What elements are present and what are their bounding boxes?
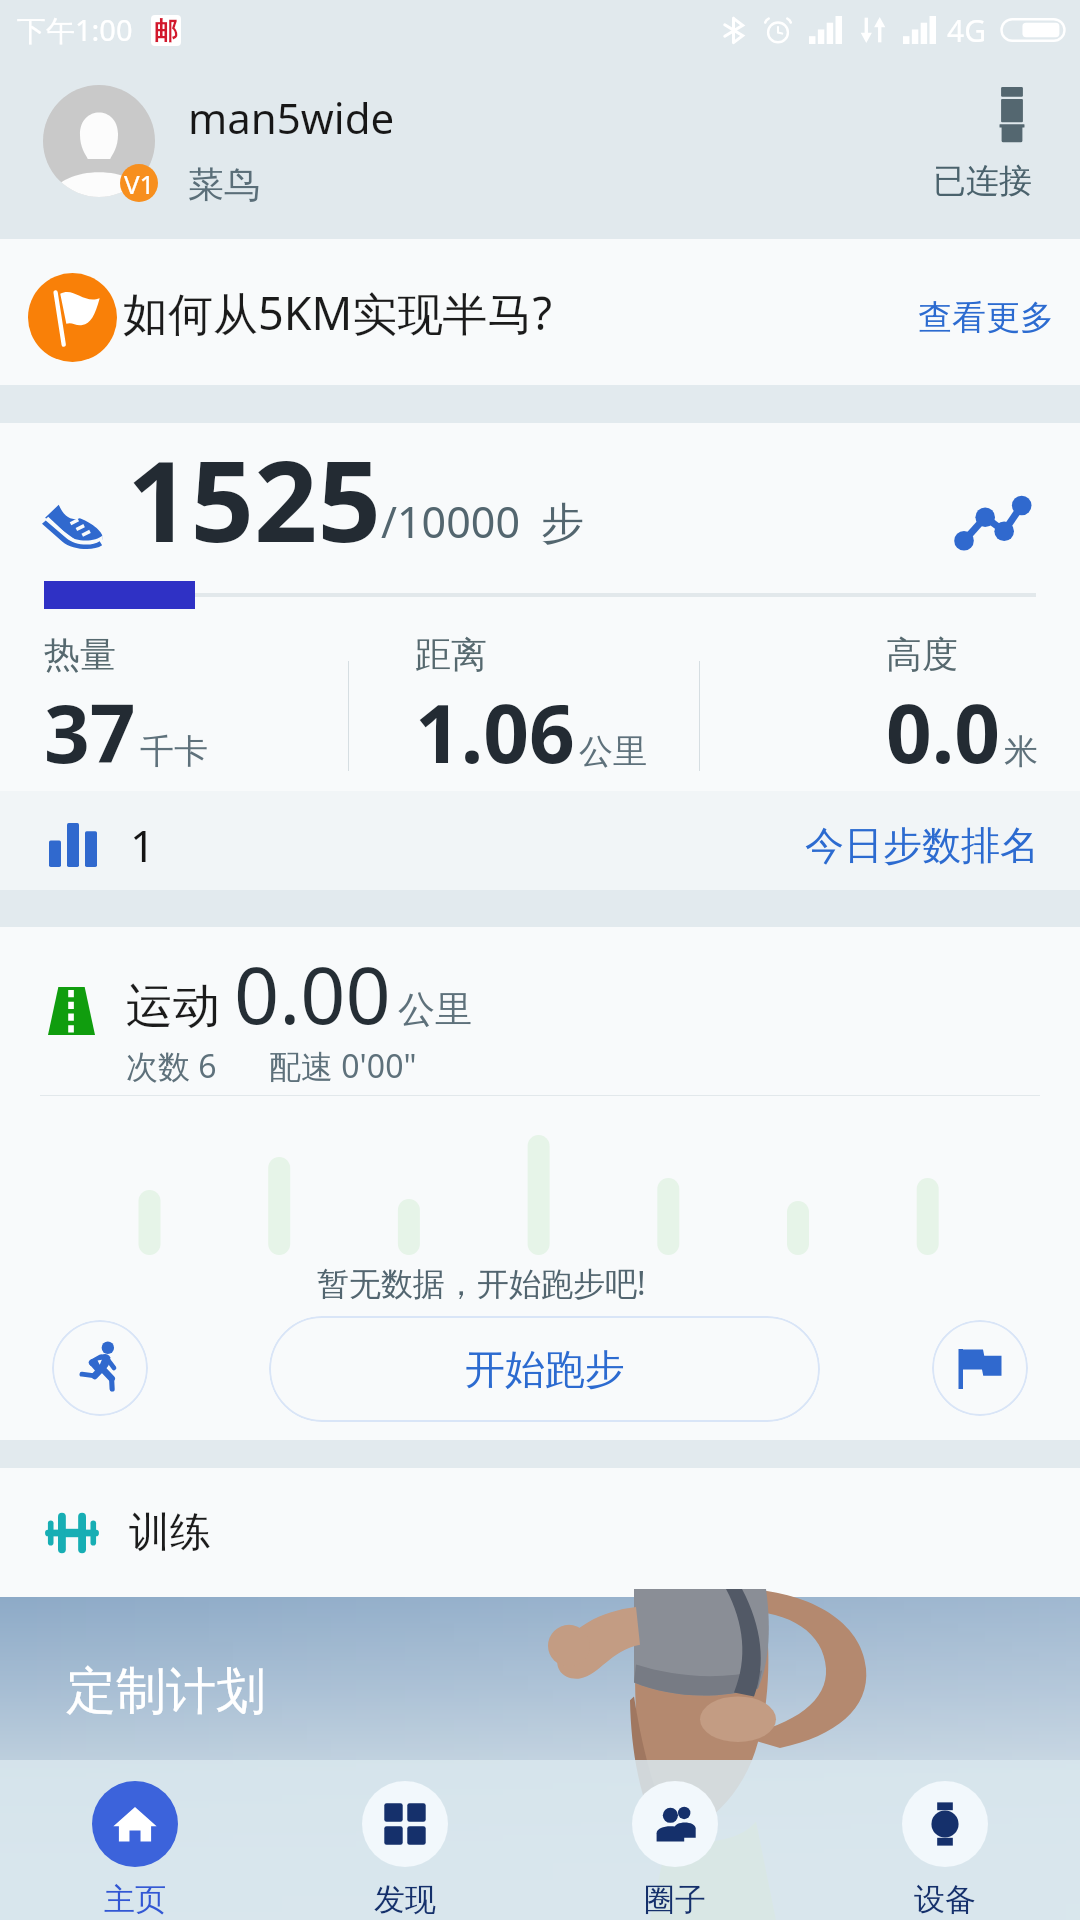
staticText: 距离 [415,632,487,677]
staticText: 设备 [914,1880,976,1919]
staticText: 开始跑步 [465,1344,625,1394]
button[interactable]: 圈子 [540,1760,810,1920]
staticText: 下午1:00 [17,10,133,50]
staticText: 1.06 [415,677,575,782]
button[interactable]: 目标 [932,1320,1028,1416]
staticText: 圈子 [644,1880,706,1919]
staticText: 查看更多 [918,296,1054,339]
staticText: 1525 [127,423,381,559]
button[interactable]: man5wide [188,92,395,207]
button[interactable]: 已连接 [880,60,1032,239]
staticText: 如何从5KM实现半马? [123,282,552,343]
staticText: man5wide [188,89,395,146]
staticText: 米 [1004,730,1038,773]
staticText: 热量 [44,632,116,677]
staticText: 邮 [154,16,178,46]
staticText: 发现 [374,1880,436,1919]
staticText: 运动 [126,977,220,1036]
staticText: 高度 [886,632,958,677]
button[interactable]: 步数趋势 [940,481,1045,567]
staticText: 37 [44,677,136,782]
staticText: 菜鸟 [188,162,260,207]
staticText: 0.0 [886,677,1000,782]
button[interactable]: 头像 [43,85,155,215]
staticText: /10000 [381,492,520,551]
staticText: 千卡 [140,730,208,773]
staticText: 0.00 [234,940,391,1048]
staticText: 公里 [579,730,647,773]
staticText: 定制计划 [66,1660,266,1723]
button[interactable]: 1 [0,791,1080,890]
button[interactable]: 发现 [270,1760,540,1920]
staticText: 今日步数排名 [805,821,1039,870]
staticText: 主页 [104,1880,166,1919]
button[interactable]: 设备 [810,1760,1080,1920]
staticText: V1 [124,166,155,201]
staticText: 次数 6 [126,1044,217,1088]
staticText: 公里 [398,986,472,1033]
staticText: 已连接 [933,160,1032,202]
staticText: 训练 [129,1507,211,1559]
staticText: 4G [947,10,986,51]
button[interactable]: 主页 [0,1760,270,1920]
staticText: 步 [541,497,584,551]
button[interactable]: 训练 [0,1468,1080,1597]
button[interactable]: 如何从5KM实现半马? [0,239,1080,385]
staticText: 暂无数据，开始跑步吧! [317,1261,646,1305]
staticText: 配速 0'00" [269,1044,417,1088]
button[interactable]: 跑步 [52,1320,148,1416]
button[interactable]: 开始跑步 [269,1316,820,1422]
staticText: 1 [130,815,156,875]
